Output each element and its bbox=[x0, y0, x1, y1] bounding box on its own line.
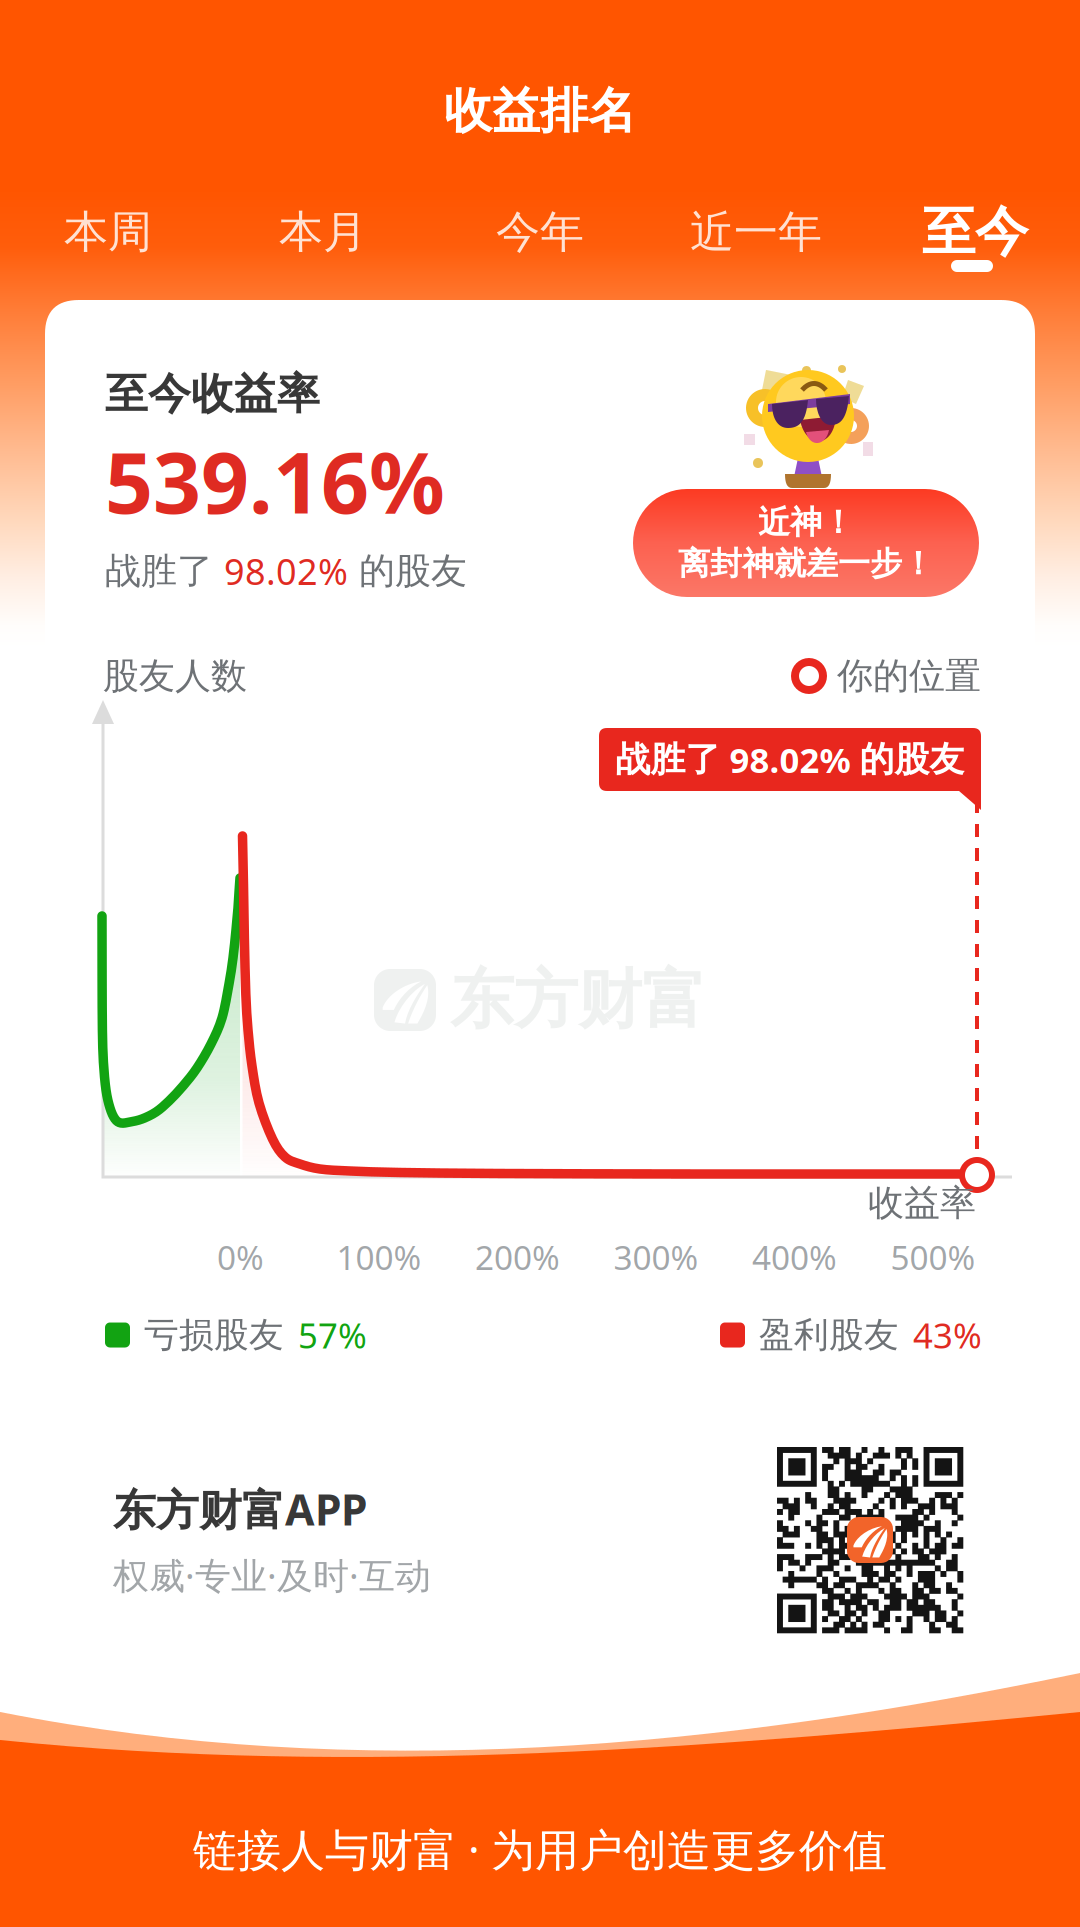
staticText: 200% bbox=[475, 1235, 560, 1279]
staticText: 500% bbox=[890, 1235, 975, 1279]
staticText: 300% bbox=[613, 1235, 698, 1279]
staticText: 东方财富 bbox=[450, 961, 706, 1039]
staticText: 400% bbox=[752, 1235, 837, 1279]
staticText: 权威·专业·及时·互动 bbox=[113, 1551, 431, 1599]
staticText: 至今 bbox=[922, 199, 1028, 265]
staticText: 亏损股友 bbox=[144, 1314, 284, 1356]
staticText: 本周 bbox=[64, 205, 152, 259]
button[interactable]: 至今 bbox=[885, 184, 1065, 280]
staticText: 股友人数 bbox=[103, 654, 247, 698]
staticText: 43% bbox=[913, 1312, 982, 1358]
button[interactable]: 本周 bbox=[18, 184, 198, 280]
staticText: 57% bbox=[298, 1312, 367, 1358]
staticText: 的股友 bbox=[359, 549, 467, 593]
staticText: 至今收益率 bbox=[105, 368, 320, 420]
staticText: 的股友 bbox=[859, 738, 964, 781]
button[interactable]: 近一年 bbox=[666, 184, 846, 280]
staticText: 今年 bbox=[496, 205, 584, 259]
staticText: 东方财富APP bbox=[113, 1481, 367, 1537]
staticText: 收益率 bbox=[868, 1181, 976, 1225]
staticText: 近神！ bbox=[758, 503, 854, 542]
staticText: 盈利股友 bbox=[759, 1314, 899, 1356]
button[interactable]: 今年 bbox=[450, 184, 630, 280]
button[interactable]: 本月 bbox=[233, 184, 413, 280]
staticText: 539.16% bbox=[105, 425, 445, 537]
staticText: 100% bbox=[336, 1235, 421, 1279]
staticText: 链接人与财富 · 为用户创造更多价值 bbox=[193, 1820, 887, 1878]
staticText: 你的位置 bbox=[837, 654, 981, 698]
staticText: 离封神就差一步！ bbox=[678, 544, 934, 583]
staticText: 本月 bbox=[279, 205, 367, 259]
staticText: 战胜了 bbox=[615, 738, 720, 781]
staticText: 0% bbox=[217, 1235, 264, 1279]
staticText: 收益排名 bbox=[444, 81, 636, 140]
staticText: 98.02% bbox=[729, 736, 850, 782]
staticText: 战胜了 bbox=[105, 549, 213, 593]
staticText: 近一年 bbox=[690, 205, 822, 259]
staticText: 98.02% bbox=[224, 547, 348, 595]
